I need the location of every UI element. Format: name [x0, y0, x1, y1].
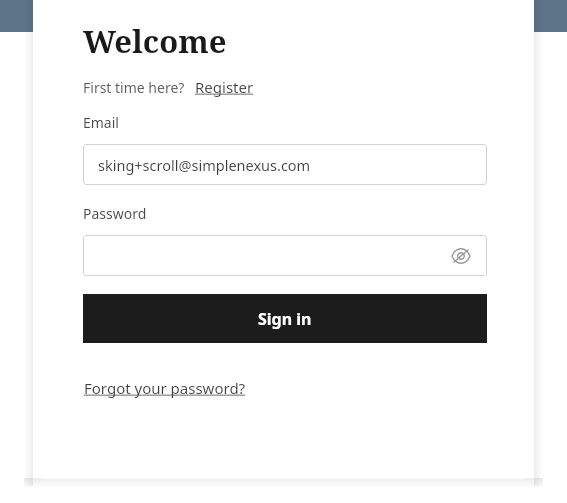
staticText: Email [83, 113, 119, 132]
staticText: Password [83, 204, 147, 223]
button[interactable]: Register [195, 77, 254, 97]
button[interactable]: Forgot your password? [84, 378, 246, 398]
button[interactable]: Show password [448, 243, 474, 269]
staticText: sking+scroll@simplenexus.com [98, 155, 311, 175]
button[interactable]: sking+scroll@simplenexus.com [83, 144, 487, 185]
staticText: Welcome [83, 20, 227, 62]
staticText: Register [195, 77, 254, 97]
staticText: Forgot your password? [84, 378, 246, 398]
button[interactable]: Sign in [83, 294, 487, 343]
staticText: Sign in [258, 308, 312, 330]
staticText: First time here? [83, 78, 185, 97]
button[interactable]: Show password [83, 235, 487, 276]
